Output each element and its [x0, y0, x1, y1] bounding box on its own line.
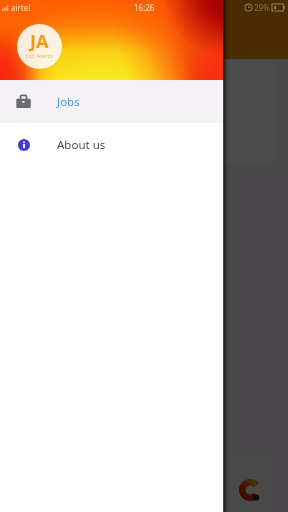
button[interactable]: Jobs — [0, 80, 224, 123]
staticText: JA — [30, 29, 49, 54]
staticText: About us — [57, 137, 106, 153]
button[interactable]: About us — [0, 123, 224, 166]
staticText: Job Alerts — [26, 52, 53, 60]
staticText: Jobs — [57, 94, 80, 110]
staticText: 16:26 — [134, 2, 155, 13]
button[interactable]: Advertisement — [7, 457, 272, 511]
staticText: 29% — [254, 2, 270, 13]
staticText: airtel — [11, 2, 31, 13]
